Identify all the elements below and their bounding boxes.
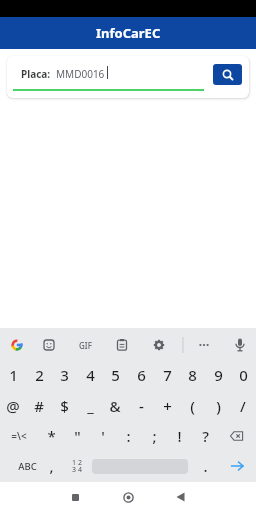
staticText: / xyxy=(240,396,246,416)
button[interactable]: " xyxy=(64,421,90,451)
staticText: GIF xyxy=(79,340,92,351)
staticText: _ xyxy=(87,396,94,416)
button[interactable]: GIF xyxy=(71,331,99,359)
button[interactable]: ) xyxy=(205,391,231,421)
button[interactable] xyxy=(116,485,140,509)
button[interactable]: 0 xyxy=(230,360,256,390)
staticText: $ xyxy=(60,396,69,416)
button[interactable]: ? xyxy=(192,421,218,451)
staticText: ? xyxy=(202,426,209,446)
staticText: MMD0016 xyxy=(56,67,105,81)
staticText: ! xyxy=(177,426,182,446)
staticText: 7 xyxy=(163,365,172,385)
staticText: : xyxy=(126,426,131,446)
staticText: ( xyxy=(190,396,195,416)
button[interactable]: =\< xyxy=(0,421,38,451)
button[interactable]: , xyxy=(38,451,64,481)
staticText: 6 xyxy=(137,365,146,385)
button[interactable]: ( xyxy=(179,391,205,421)
button[interactable]: 7 xyxy=(154,360,180,390)
staticText: 2 xyxy=(35,365,44,385)
staticText: InfoCarEC xyxy=(96,24,161,42)
staticText: 0 xyxy=(239,365,248,385)
staticText: & xyxy=(109,396,121,416)
button[interactable]: 1 xyxy=(0,360,26,390)
staticText: 1 xyxy=(9,365,18,385)
button[interactable]: 8 xyxy=(179,360,205,390)
staticText: 9 xyxy=(214,365,223,385)
staticText: Placa: xyxy=(21,67,51,81)
staticText: " xyxy=(74,426,81,446)
staticText: ABC xyxy=(18,460,37,473)
staticText: ; xyxy=(152,426,157,446)
button[interactable]: ; xyxy=(141,421,167,451)
staticText: 4 xyxy=(86,365,95,385)
button[interactable]: 3 xyxy=(51,360,77,390)
staticText: 3 xyxy=(60,365,69,385)
staticText: # xyxy=(34,396,44,416)
button[interactable] xyxy=(213,64,242,85)
button[interactable]: & xyxy=(102,391,128,421)
button[interactable]: : xyxy=(115,421,141,451)
staticText: @ xyxy=(6,396,20,416)
button[interactable]: _ xyxy=(77,391,103,421)
button[interactable] xyxy=(63,485,87,509)
button[interactable]: . xyxy=(192,451,218,481)
button[interactable]: @ xyxy=(0,391,26,421)
staticText: . xyxy=(203,456,208,476)
button[interactable]: ' xyxy=(90,421,116,451)
button[interactable] xyxy=(218,451,256,481)
button[interactable]: ! xyxy=(166,421,192,451)
staticText: 1 2 3 4 xyxy=(72,458,82,475)
staticText: ' xyxy=(101,426,105,446)
button[interactable]: 9 xyxy=(205,360,231,390)
button[interactable]: / xyxy=(230,391,256,421)
button[interactable]: * xyxy=(38,421,64,451)
button[interactable]: 1 2 3 4 xyxy=(64,451,90,481)
staticText: - xyxy=(139,396,144,416)
button[interactable]: $ xyxy=(51,391,77,421)
button[interactable]: ABC xyxy=(8,451,46,481)
button[interactable]: # xyxy=(26,391,52,421)
staticText: ) xyxy=(216,396,221,416)
button[interactable] xyxy=(168,485,192,509)
staticText: * xyxy=(47,426,56,446)
button[interactable] xyxy=(218,421,256,451)
button[interactable]: 4 xyxy=(77,360,103,390)
staticText: + xyxy=(163,396,172,416)
staticText: 8 xyxy=(188,365,197,385)
staticText: 5 xyxy=(111,365,120,385)
button[interactable]: 6 xyxy=(128,360,154,390)
button[interactable]: 5 xyxy=(102,360,128,390)
staticText: =\< xyxy=(11,429,27,443)
button[interactable]: - xyxy=(128,391,154,421)
button[interactable]: 2 xyxy=(26,360,52,390)
button[interactable]: + xyxy=(154,391,180,421)
staticText: , xyxy=(49,456,54,476)
